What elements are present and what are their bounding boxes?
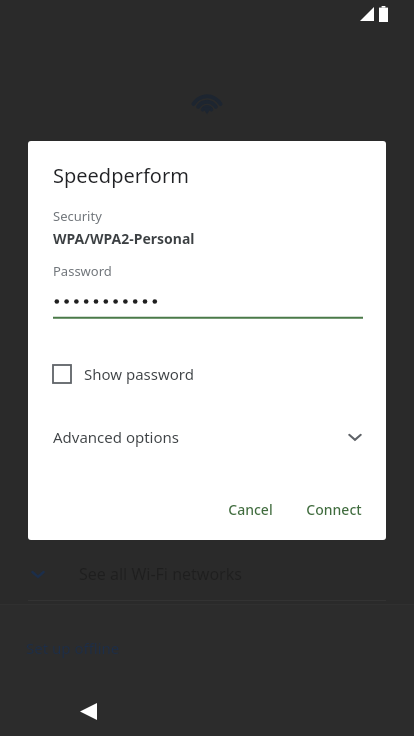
staticText: Connect (306, 500, 362, 519)
staticText: Speedperform (53, 162, 189, 189)
button[interactable]: Connect (295, 491, 373, 528)
button[interactable] (53, 294, 363, 319)
staticText: Cancel (228, 500, 273, 519)
button[interactable]: Set up offline (10, 630, 136, 666)
button[interactable]: Show password (53, 358, 194, 390)
staticText: See all Wi-Fi networks (79, 563, 242, 585)
staticText: Show password (84, 364, 194, 384)
button[interactable]: Advanced options (28, 421, 386, 453)
staticText: Set up offline (26, 638, 120, 658)
button[interactable]: Cancel (217, 491, 284, 528)
button[interactable]: Back (68, 691, 108, 731)
staticText: Advanced options (53, 427, 180, 447)
staticText: Security (53, 207, 102, 225)
staticText: Password (53, 262, 112, 280)
staticText: WPA/WPA2-Personal (53, 229, 195, 248)
